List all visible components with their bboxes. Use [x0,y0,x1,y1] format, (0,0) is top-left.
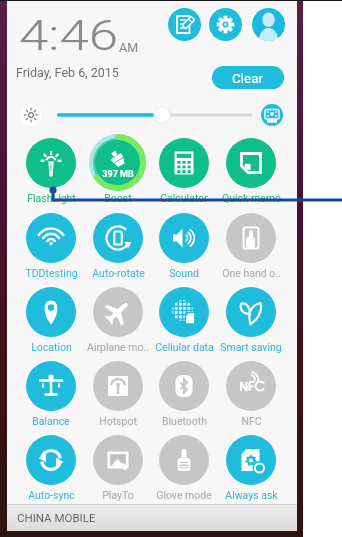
button[interactable]: Cellular data [151,287,217,355]
staticText: Boost [104,192,132,204]
staticText: Sound [169,267,199,279]
button[interactable]: PlayTo [85,435,151,503]
staticText: Bluetooth [162,415,207,427]
staticText: Balance [32,415,70,427]
staticText: NFC [241,415,262,427]
button[interactable]: Calculator [151,138,217,206]
button[interactable]: Hotspot [85,361,151,429]
staticText: PlayTo [102,489,134,501]
staticText: FlashLight [27,192,76,204]
staticText: Auto-sync [28,489,75,501]
button[interactable]: Auto-rotate [85,213,151,281]
staticText: One hand o.. [222,267,281,279]
staticText: Always ask [225,489,278,501]
staticText: Clear [232,70,264,86]
staticText: Smart saving [220,341,282,353]
button[interactable]: Balance [18,361,84,429]
button[interactable]: Auto brightness [261,104,283,126]
staticText: Cellular data [155,341,214,353]
staticText: Hotspot [99,415,137,427]
button[interactable]: Glove mode [151,435,217,503]
staticText: Auto-rotate [92,267,145,279]
button[interactable]: Auto-sync [18,435,84,503]
button[interactable]: Settings [209,8,242,41]
button[interactable]: Airplane mo.. [85,287,151,355]
button[interactable]: Quick memo [168,8,201,41]
button[interactable]: Boost [85,138,151,206]
button[interactable]: Location [18,287,84,355]
staticText: Friday, Feb 6, 2015 [16,65,119,80]
staticText: Calculator [160,192,208,204]
button[interactable]: Smart saving [218,287,284,355]
staticText: Airplane mo.. [87,341,149,353]
button[interactable]: Clear [212,66,284,89]
button[interactable]: Always ask [218,435,284,503]
button[interactable]: Profile [252,8,285,41]
button[interactable]: Brightness [20,104,42,126]
button[interactable]: Bluetooth [151,361,217,429]
button[interactable]: Quick memo [218,138,284,206]
button[interactable]: One hand o.. [218,213,284,281]
staticText: Glove mode [156,489,212,501]
staticText: Location [31,341,72,353]
staticText: 397 MB [93,169,143,180]
staticText: TDDtesting [25,267,78,279]
staticText: CHINA MOBILE [17,511,96,524]
staticText: 4:46 [19,11,118,60]
button[interactable]: Sound [151,213,217,281]
button[interactable]: TDDtesting [18,213,84,281]
staticText: Quick memo [222,192,281,204]
button[interactable]: NFC [218,361,284,429]
button[interactable]: CHINA MOBILE [7,504,297,531]
staticText: AM [119,40,139,55]
button[interactable]: FlashLight [18,138,84,206]
